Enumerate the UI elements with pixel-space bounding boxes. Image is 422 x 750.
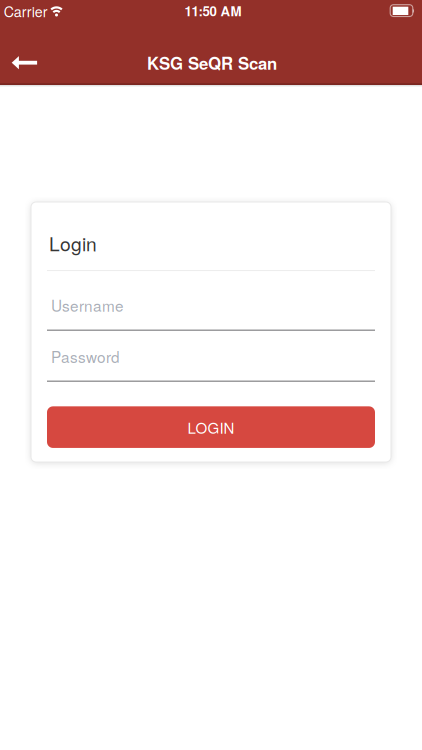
staticText: Carrier [4,1,48,21]
staticText: 11:50 AM [184,1,241,20]
button[interactable]: Back [0,37,48,89]
button[interactable]: Username [47,296,375,331]
button[interactable]: LOGIN [47,406,375,448]
staticText: LOGIN [187,416,234,438]
staticText: Password [51,345,120,367]
staticText: Username [51,294,124,316]
staticText: Login [49,229,97,257]
staticText: KSG SeQR Scan [147,51,277,75]
button[interactable]: Password [47,347,375,382]
